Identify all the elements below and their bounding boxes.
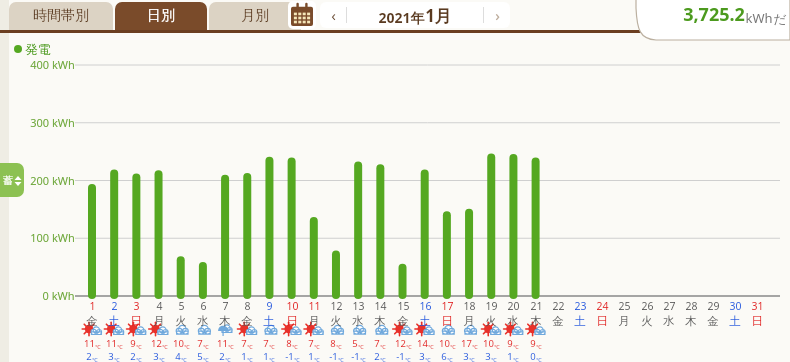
staticText: 7 xyxy=(197,337,203,350)
staticText: 火 xyxy=(485,314,497,328)
staticText: 14 xyxy=(374,299,387,313)
staticText: -1 xyxy=(329,350,338,362)
staticText: 水 xyxy=(352,314,364,328)
staticText: 9 xyxy=(507,337,513,350)
staticText: 300 kWh xyxy=(30,115,75,130)
staticText: ℃ xyxy=(380,343,386,350)
staticText: 2 xyxy=(219,350,225,362)
staticText: ℃ xyxy=(203,356,209,362)
staticText: ℃ xyxy=(247,356,253,362)
staticText: 11 xyxy=(84,337,95,350)
staticText: 木 xyxy=(219,314,231,328)
staticText: 9 xyxy=(266,299,273,313)
staticText: ‹ xyxy=(331,5,336,25)
button[interactable]: 月別 xyxy=(209,2,301,30)
staticText: 30 xyxy=(729,299,742,313)
staticText: 3 xyxy=(485,350,491,362)
staticText: 金 xyxy=(552,314,564,328)
staticText: ℃ xyxy=(203,343,209,350)
staticText: 月 xyxy=(463,314,475,328)
staticText: 14 xyxy=(417,337,428,350)
button[interactable]: 日別 xyxy=(115,2,207,30)
staticText: 11 xyxy=(217,337,228,350)
staticText: 10 xyxy=(173,337,184,350)
staticText: 15 xyxy=(397,299,410,313)
staticText: 1 xyxy=(308,350,314,362)
staticText: 金 xyxy=(241,314,253,328)
staticText: 5 xyxy=(197,350,203,362)
staticText: 日 xyxy=(596,314,608,328)
button[interactable]: Calendar xyxy=(288,1,316,29)
staticText: 4 xyxy=(156,299,163,313)
staticText: -1 xyxy=(396,350,405,362)
staticText: ℃ xyxy=(536,343,542,350)
staticText: 土 xyxy=(729,314,741,328)
staticText: ℃ xyxy=(228,343,234,350)
staticText: 日 xyxy=(751,314,763,328)
button[interactable]: 時間帯別 xyxy=(9,2,113,30)
staticText: 火 xyxy=(641,314,653,328)
staticText: 日 xyxy=(130,314,142,328)
staticText: 6 xyxy=(200,299,207,313)
staticText: 水 xyxy=(507,314,519,328)
staticText: 土 xyxy=(574,314,586,328)
staticText: 1 xyxy=(263,350,269,362)
staticText: ℃ xyxy=(247,343,253,350)
staticText: 21 xyxy=(530,299,543,313)
staticText: 2 xyxy=(86,350,92,362)
staticText: ℃ xyxy=(405,356,411,362)
staticText: 12 xyxy=(395,337,406,350)
staticText: 7 xyxy=(263,337,269,350)
staticText: 13 xyxy=(352,299,365,313)
staticText: 7 xyxy=(222,299,229,313)
staticText: ℃ xyxy=(447,356,453,362)
staticText: 9 xyxy=(130,337,136,350)
staticText: 25 xyxy=(618,299,631,313)
staticText: 金 xyxy=(86,314,98,328)
staticText: 5 xyxy=(178,299,185,313)
staticText: 12 xyxy=(151,337,162,350)
staticText: 月別 xyxy=(241,7,269,25)
staticText: ℃ xyxy=(491,356,497,362)
staticText: 土 xyxy=(263,314,275,328)
staticText: 月 xyxy=(618,314,630,328)
staticText: 10 xyxy=(439,337,450,350)
staticText: ℃ xyxy=(469,356,475,362)
staticText: 1 xyxy=(89,299,96,313)
staticText: ℃ xyxy=(536,356,542,362)
staticText: 17 xyxy=(441,299,454,313)
staticText: 8 xyxy=(244,299,251,313)
staticText: ℃ xyxy=(428,343,434,350)
staticText: 1 xyxy=(507,350,513,362)
staticText: 4 xyxy=(175,350,181,362)
staticText: 蓄 xyxy=(3,174,13,187)
staticText: 0 kWh xyxy=(42,288,75,303)
staticText: ℃ xyxy=(114,356,120,362)
staticText: ℃ xyxy=(336,343,342,350)
staticText: ℃ xyxy=(358,343,364,350)
staticText: 土 xyxy=(108,314,120,328)
staticText: ℃ xyxy=(92,356,98,362)
staticText: ℃ xyxy=(162,343,168,350)
staticText: 100 kWh xyxy=(30,230,75,245)
staticText: 水 xyxy=(197,314,209,328)
staticText: 0 xyxy=(530,350,536,362)
staticText: 27 xyxy=(663,299,676,313)
staticText: 29 xyxy=(707,299,720,313)
staticText: -1 xyxy=(285,350,294,362)
staticText: ℃ xyxy=(314,356,320,362)
staticText: 3 xyxy=(108,350,114,362)
staticText: 8 xyxy=(286,337,292,350)
staticText: 11 xyxy=(106,337,117,350)
staticText: 7 xyxy=(308,337,314,350)
staticText: ℃ xyxy=(184,343,190,350)
button[interactable]: Next month xyxy=(484,2,510,28)
staticText: 26 xyxy=(641,299,654,313)
staticText: 月 xyxy=(153,314,165,328)
button[interactable]: Previous month xyxy=(320,2,346,28)
staticText: 28 xyxy=(685,299,698,313)
staticText: 31 xyxy=(751,299,764,313)
button[interactable]: Expand panel xyxy=(0,163,24,197)
button[interactable]: 2021年 xyxy=(347,4,483,27)
staticText: ℃ xyxy=(269,343,275,350)
